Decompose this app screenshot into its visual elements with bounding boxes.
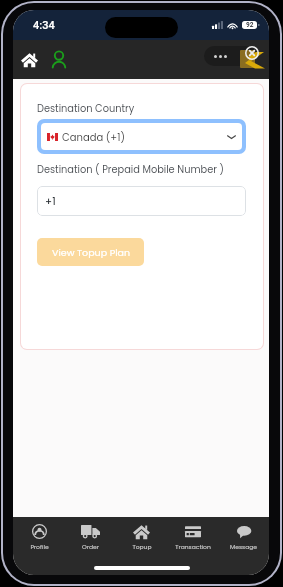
staticText: Transaction xyxy=(175,543,211,551)
button[interactable]: Canada (+1) xyxy=(41,123,242,150)
button[interactable]: View Topup Plan xyxy=(37,238,144,266)
button[interactable]: Order xyxy=(65,523,116,551)
button[interactable]: Close xyxy=(245,46,259,60)
staticText: Profile xyxy=(30,543,49,551)
button[interactable]: Topup xyxy=(116,523,167,551)
staticText: View Topup Plan xyxy=(52,246,130,259)
staticText: 92 xyxy=(246,21,254,29)
button[interactable]: Home xyxy=(15,45,44,74)
staticText: Destination ( Prepaid Mobile Number ) xyxy=(37,163,224,177)
button[interactable]: +1 xyxy=(37,186,246,216)
button[interactable]: Account xyxy=(44,45,73,74)
staticText: Destination Country xyxy=(37,102,135,116)
staticText: Topup xyxy=(132,543,152,551)
button[interactable]: Profile xyxy=(13,523,65,551)
staticText: +1 xyxy=(45,194,56,208)
button[interactable]: Transaction xyxy=(167,523,218,551)
staticText: Order xyxy=(82,543,99,551)
staticText: Message xyxy=(230,543,257,551)
staticText: Canada (+1) xyxy=(62,130,125,144)
staticText: 4:34 xyxy=(33,19,55,32)
button[interactable]: Message xyxy=(218,523,269,551)
button[interactable]: More options xyxy=(204,46,256,66)
